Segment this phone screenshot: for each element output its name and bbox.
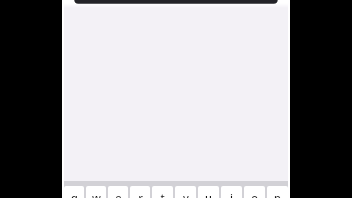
- button[interactable]: p: [267, 186, 288, 198]
- button[interactable]: o: [244, 186, 265, 198]
- staticText: p: [274, 190, 281, 198]
- button[interactable]: w: [86, 186, 106, 198]
- button[interactable]: t: [152, 186, 173, 198]
- staticText: u: [205, 190, 212, 198]
- button[interactable]: Search field: [62, 0, 290, 8]
- button[interactable]: u: [198, 186, 219, 198]
- staticText: e: [115, 190, 122, 198]
- other: Keyboard: [62, 181, 290, 198]
- staticText: i: [230, 190, 233, 198]
- button[interactable]: i: [221, 186, 242, 198]
- button[interactable]: e: [108, 186, 128, 198]
- staticText: y: [183, 190, 189, 198]
- button[interactable]: y: [175, 186, 196, 198]
- staticText: t: [160, 190, 165, 198]
- staticText: w: [92, 190, 101, 198]
- staticText: r: [138, 190, 143, 198]
- button[interactable]: r: [130, 186, 150, 198]
- button[interactable]: q: [64, 186, 84, 198]
- staticText: q: [71, 190, 78, 198]
- staticText: o: [251, 190, 258, 198]
